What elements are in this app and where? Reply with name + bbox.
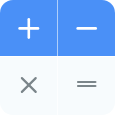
button[interactable]: Add [0,0,57,56]
button[interactable]: Subtract [58,0,115,56]
button[interactable]: Equals [58,57,115,115]
button[interactable]: Multiply [0,57,57,115]
